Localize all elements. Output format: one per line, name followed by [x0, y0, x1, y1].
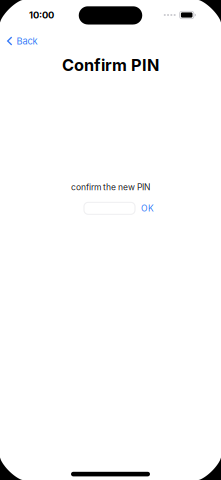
- button[interactable]: PIN entry field: [84, 202, 135, 214]
- staticText: 10:00: [29, 9, 54, 21]
- button[interactable]: OK: [140, 202, 155, 214]
- staticText: Back: [16, 35, 37, 47]
- staticText: confirm the new PIN: [71, 182, 150, 192]
- staticText: Confirm PIN: [62, 55, 159, 75]
- button[interactable]: Back: [0, 32, 51, 50]
- staticText: OK: [141, 203, 154, 213]
